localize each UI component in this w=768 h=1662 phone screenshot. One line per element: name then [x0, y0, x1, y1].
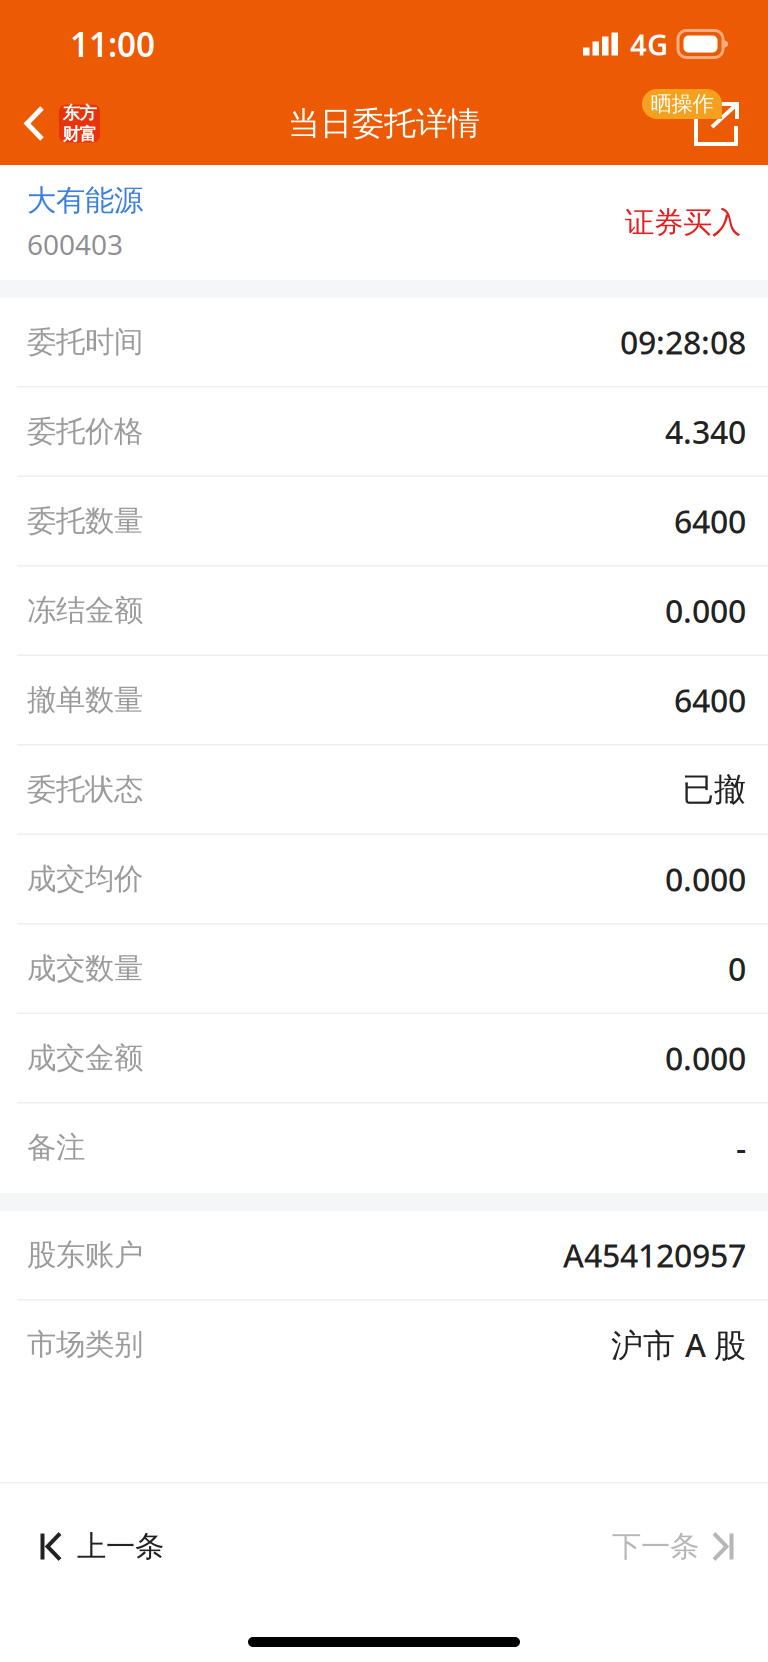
staticText: 委托状态 — [27, 771, 143, 807]
staticText: 晒操作 — [650, 91, 713, 117]
staticText: 东方 — [62, 102, 96, 123]
staticText: 财富 — [62, 123, 96, 145]
staticText: 委托价格 — [27, 413, 143, 449]
button[interactable]: 分享 — [640, 89, 768, 165]
staticText: 撤单数量 — [27, 682, 143, 718]
button[interactable]: 返回东方财富 — [0, 82, 116, 165]
staticText: 冻结金额 — [27, 592, 143, 628]
staticText: 成交均价 — [27, 861, 143, 897]
staticText: 600403 — [27, 225, 123, 263]
staticText: 0 — [728, 947, 746, 990]
staticText: A454120957 — [563, 1234, 746, 1276]
staticText: 0.000 — [665, 1037, 746, 1079]
staticText: 大有能源 — [27, 182, 143, 218]
staticText: 4.340 — [665, 410, 746, 453]
staticText: 当日委托详情 — [288, 104, 480, 143]
staticText: 股东账户 — [27, 1237, 143, 1273]
button[interactable]: 下一条 — [570, 1483, 768, 1609]
staticText: 6400 — [674, 500, 746, 542]
staticText: 沪市 A 股 — [611, 1323, 746, 1366]
staticText: 11:00 — [70, 22, 155, 66]
staticText: 委托数量 — [27, 503, 143, 539]
staticText: 上一条 — [77, 1528, 164, 1564]
staticText: 已撤 — [682, 770, 746, 809]
staticText: 成交金额 — [27, 1040, 143, 1076]
staticText: 成交数量 — [27, 950, 143, 986]
staticText: 证券买入 — [625, 204, 741, 240]
staticText: 6400 — [674, 679, 746, 721]
staticText: 09:28:08 — [620, 321, 746, 363]
staticText: 0.000 — [665, 858, 746, 900]
staticText: 备注 — [27, 1129, 85, 1165]
staticText: 4G — [630, 24, 668, 63]
staticText: 市场类别 — [27, 1326, 143, 1362]
staticText: - — [736, 1126, 746, 1169]
staticText: 0.000 — [665, 589, 746, 632]
button[interactable]: 上一条 — [0, 1483, 206, 1609]
staticText: 委托时间 — [27, 324, 143, 360]
staticText: 下一条 — [612, 1528, 699, 1564]
